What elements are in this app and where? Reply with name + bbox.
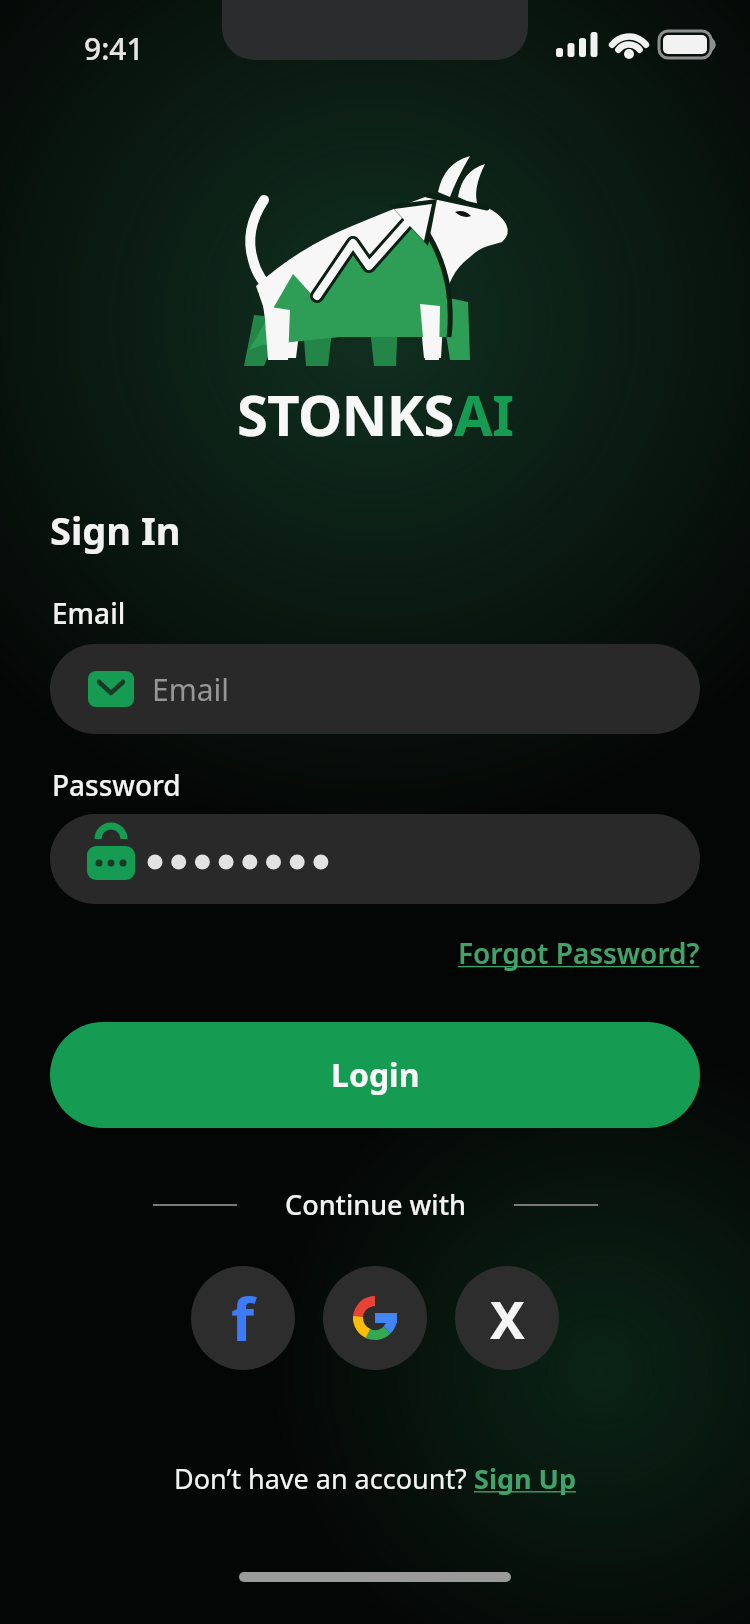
button[interactable]: f bbox=[191, 1266, 295, 1370]
button[interactable]: Forgot Password? bbox=[458, 934, 700, 972]
staticText: 9:41 bbox=[84, 28, 144, 69]
staticText: Login bbox=[331, 1053, 420, 1097]
staticText: Password bbox=[52, 766, 181, 804]
staticText: X bbox=[490, 1283, 525, 1354]
staticText: Email bbox=[52, 594, 126, 632]
staticText: f bbox=[231, 1277, 255, 1359]
button[interactable] bbox=[50, 814, 700, 904]
staticText: AI bbox=[454, 376, 514, 452]
staticText: Sign In bbox=[50, 504, 181, 556]
staticText: Continue with bbox=[285, 1186, 466, 1223]
staticText: Email bbox=[152, 669, 230, 710]
button[interactable]: Login bbox=[50, 1022, 700, 1128]
staticText: Don’t have an account? bbox=[174, 1460, 474, 1497]
button[interactable]: Sign Up bbox=[474, 1460, 577, 1497]
button[interactable]: Email bbox=[50, 644, 700, 734]
staticText: STONKS bbox=[237, 376, 454, 452]
button[interactable] bbox=[323, 1266, 427, 1370]
button[interactable]: X bbox=[455, 1266, 559, 1370]
